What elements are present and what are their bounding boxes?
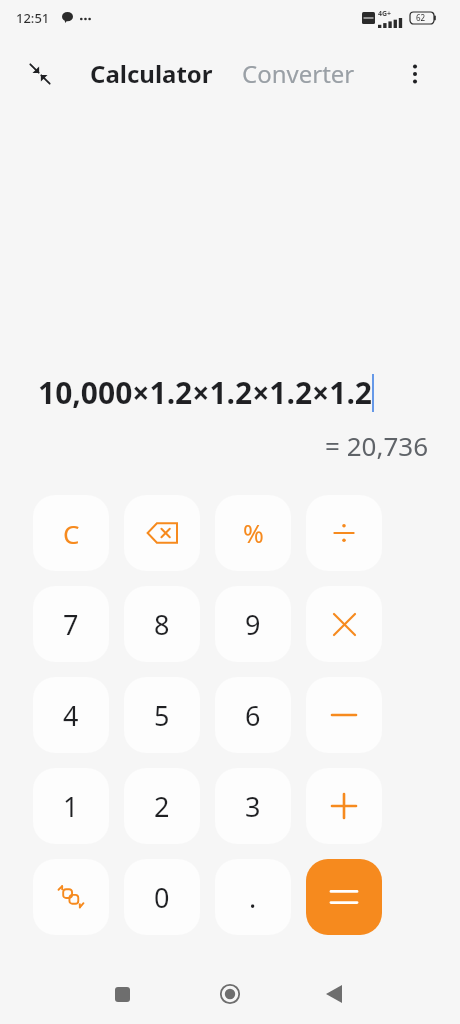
staticText: 0 xyxy=(154,879,170,916)
staticText: 9 xyxy=(245,606,261,643)
other: Multiply xyxy=(334,614,355,635)
other: Minus xyxy=(332,713,356,717)
button[interactable]: Back xyxy=(312,972,356,1016)
button[interactable]: More options xyxy=(394,53,436,95)
staticText: 5 xyxy=(154,697,170,734)
button[interactable]: Percent xyxy=(215,495,291,571)
button[interactable]: Converter xyxy=(234,50,363,96)
staticText: 7 xyxy=(63,606,79,643)
button[interactable]: Equals xyxy=(306,859,382,935)
staticText: 4G+ xyxy=(378,9,392,19)
staticText: 2 xyxy=(154,788,170,825)
button[interactable]: 5 xyxy=(124,677,200,753)
staticText: 62 xyxy=(416,12,426,23)
button[interactable]: Recent apps xyxy=(100,972,144,1016)
other: Plus xyxy=(332,794,356,818)
other: Clear xyxy=(63,516,80,551)
button[interactable]: 6 xyxy=(215,677,291,753)
button[interactable]: 0 xyxy=(124,859,200,935)
other: Backspace xyxy=(147,522,177,544)
staticText: 3 xyxy=(245,788,261,825)
button[interactable]: Divide xyxy=(306,495,382,571)
staticText: 1 xyxy=(63,788,79,825)
staticText: 6 xyxy=(245,697,261,734)
button[interactable]: 3 xyxy=(215,768,291,844)
staticText: = 20,736 xyxy=(0,428,428,463)
staticText: C xyxy=(63,516,80,551)
staticText: 4 xyxy=(63,697,79,734)
staticText: % xyxy=(243,516,264,550)
button[interactable]: Collapse xyxy=(20,54,60,94)
staticText: 8 xyxy=(154,606,170,643)
button[interactable]: 2 xyxy=(124,768,200,844)
button[interactable]: Backspace xyxy=(124,495,200,571)
other: Scientific functions xyxy=(58,884,84,910)
staticText: Converter xyxy=(242,57,355,90)
button[interactable]: Calculator xyxy=(82,50,221,96)
button[interactable]: Minus xyxy=(306,677,382,753)
button[interactable]: 4 xyxy=(33,677,109,753)
button[interactable]: Plus xyxy=(306,768,382,844)
button[interactable]: . xyxy=(215,859,291,935)
button[interactable]: 7 xyxy=(33,586,109,662)
button[interactable]: 9 xyxy=(215,586,291,662)
other: Divide xyxy=(332,521,356,545)
staticText: . xyxy=(249,879,257,916)
button[interactable]: 1 xyxy=(33,768,109,844)
staticText: 12:51 xyxy=(16,9,50,27)
button[interactable]: Home xyxy=(208,972,252,1016)
staticText: 10,000×1.2×1.2×1.2×1.2 xyxy=(38,372,372,413)
staticText: Calculator xyxy=(90,57,213,90)
button[interactable]: Scientific functions xyxy=(33,859,109,935)
button[interactable]: Multiply xyxy=(306,586,382,662)
other: Percent xyxy=(243,516,264,550)
button[interactable]: Clear xyxy=(33,495,109,571)
button[interactable]: 8 xyxy=(124,586,200,662)
